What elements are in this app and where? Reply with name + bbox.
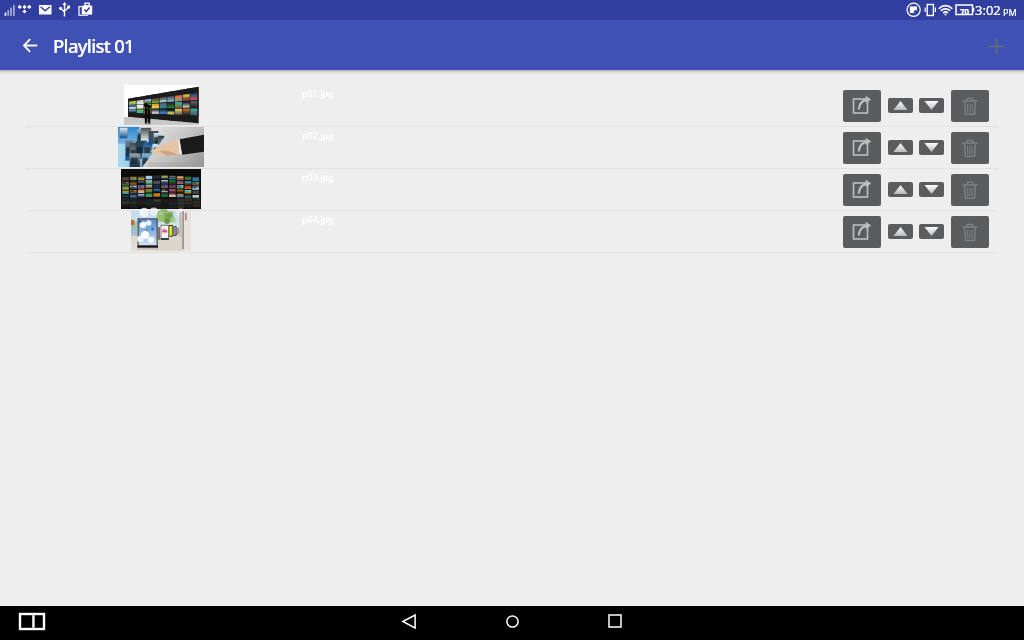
button[interactable]: Move up bbox=[888, 224, 913, 239]
staticText: p04.jpg bbox=[302, 213, 334, 225]
button[interactable]: Open bbox=[843, 174, 881, 206]
staticText: p01.jpg bbox=[302, 87, 334, 99]
button[interactable]: Move down bbox=[919, 182, 944, 197]
button[interactable]: p01.jpg bbox=[0, 85, 1024, 127]
button[interactable]: p03.jpg bbox=[0, 169, 1024, 211]
button[interactable]: Open bbox=[843, 90, 881, 122]
button[interactable]: Delete bbox=[951, 174, 989, 206]
button[interactable]: Back bbox=[14, 29, 46, 61]
staticText: PM bbox=[1003, 6, 1017, 18]
button[interactable]: Back bbox=[394, 606, 424, 636]
staticText: p03.jpg bbox=[302, 171, 334, 183]
button[interactable]: Move up bbox=[888, 140, 913, 155]
button[interactable]: Add bbox=[981, 31, 1011, 61]
button[interactable]: Delete bbox=[951, 132, 989, 164]
button[interactable]: Move down bbox=[919, 224, 944, 239]
button[interactable]: Delete bbox=[951, 216, 989, 248]
button[interactable]: Open bbox=[843, 216, 881, 248]
staticText: Playlist 01 bbox=[53, 33, 134, 58]
button[interactable]: Recents bbox=[600, 606, 630, 636]
button[interactable]: Move down bbox=[919, 140, 944, 155]
staticText: 3:02 bbox=[975, 1, 1001, 19]
button[interactable]: p02.jpg bbox=[0, 127, 1024, 169]
staticText: 70 bbox=[960, 6, 970, 17]
button[interactable]: Move up bbox=[888, 182, 913, 197]
button[interactable]: Move up bbox=[888, 98, 913, 113]
button[interactable]: Home bbox=[497, 606, 527, 636]
button[interactable]: Split screen bbox=[17, 606, 47, 636]
button[interactable]: p04.jpg bbox=[0, 211, 1024, 253]
staticText: p02.jpg bbox=[302, 129, 334, 141]
button[interactable]: Move down bbox=[919, 98, 944, 113]
button[interactable]: Open bbox=[843, 132, 881, 164]
button[interactable]: Delete bbox=[951, 90, 989, 122]
